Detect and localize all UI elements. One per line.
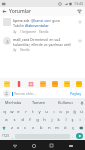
staticText: ş — [71, 117, 74, 123]
button[interactable]: j — [48, 116, 55, 124]
button[interactable]: t — [29, 108, 36, 116]
button[interactable]: Yorum ekle... — [12, 91, 69, 96]
button[interactable]: Emoji — [51, 80, 58, 87]
staticText: i — [79, 117, 81, 123]
button[interactable]: mall_cost — [0, 34, 85, 52]
button[interactable]: Like — [76, 18, 83, 25]
button[interactable]: b — [37, 124, 45, 132]
button[interactable]: x — [15, 124, 22, 132]
staticText: #lakoventolar — [25, 23, 49, 28]
button[interactable]: l — [62, 116, 69, 124]
button[interactable]: s — [10, 116, 18, 124]
button[interactable]: q — [0, 108, 8, 116]
button[interactable]: ı — [50, 108, 57, 116]
button[interactable]: Like — [76, 37, 83, 44]
button[interactable]: Merhaba — [0, 100, 26, 105]
button[interactable]: Emoji — [15, 80, 22, 87]
staticText: y — [38, 109, 41, 115]
button[interactable]: Comma — [10, 134, 15, 139]
button[interactable]: Voice input — [78, 98, 85, 107]
staticText: r — [25, 109, 27, 115]
button[interactable]: ö — [61, 124, 69, 132]
button[interactable]: Emoji — [63, 80, 70, 87]
button[interactable]: Keyboard — [66, 141, 75, 150]
button[interactable]: v — [29, 124, 37, 132]
button[interactable]: ü — [78, 108, 85, 116]
button[interactable]: r — [22, 108, 29, 116]
staticText: Paylaş — [70, 91, 81, 96]
button[interactable]: g — [34, 116, 41, 124]
staticText: Demetevol en su4 — [30, 37, 61, 42]
staticText: x — [17, 125, 20, 131]
button[interactable]: u — [43, 108, 50, 116]
button[interactable]: ş — [69, 116, 76, 124]
staticText: b — [40, 125, 43, 131]
button[interactable]: z — [8, 124, 15, 132]
staticText: 1 beğenme — [20, 30, 36, 34]
button[interactable]: i — [76, 116, 83, 124]
staticText: ç — [72, 125, 75, 131]
staticText: gura — [52, 18, 60, 23]
button[interactable]: h — [41, 116, 48, 124]
button[interactable]: c — [22, 124, 29, 132]
button[interactable]: Emoji — [27, 80, 34, 87]
staticText: @kanxi.savi — [31, 18, 52, 23]
staticText: p — [66, 109, 69, 115]
staticText: v — [32, 125, 35, 131]
button[interactable]: ?123 — [1, 133, 10, 139]
button[interactable]: ğ — [71, 108, 78, 116]
staticText: t — [32, 109, 34, 115]
staticText: Yorumlar — [9, 8, 32, 15]
staticText: Kullanıcı — [58, 100, 73, 105]
button[interactable]: w — [8, 108, 15, 116]
button[interactable]: Tamam — [26, 100, 52, 105]
staticText: z — [11, 125, 13, 131]
button[interactable]: m — [53, 124, 61, 132]
staticText: Yanıtla — [20, 48, 30, 52]
button[interactable]: Emoji — [39, 80, 46, 87]
staticText: n — [48, 125, 51, 131]
button[interactable]: Emoji — [3, 80, 10, 87]
staticText: e — [17, 109, 20, 115]
staticText: kpme.sdc — [13, 18, 31, 23]
button[interactable]: Backspace — [77, 124, 85, 132]
button[interactable]: Home — [29, 141, 38, 150]
button[interactable]: o — [57, 108, 64, 116]
button[interactable]: Back — [0, 7, 9, 16]
staticText: Merhaba — [5, 100, 22, 105]
staticText: j — [51, 117, 53, 123]
staticText: l — [65, 117, 67, 123]
button[interactable]: p — [64, 108, 71, 116]
button[interactable]: Kullanıcı — [52, 100, 78, 105]
staticText: a — [5, 117, 8, 123]
button[interactable]: Back — [10, 141, 19, 150]
button[interactable]: Filter — [75, 7, 84, 16]
staticText: ö — [64, 125, 67, 131]
button[interactable]: f — [26, 116, 34, 124]
staticText: c — [24, 125, 27, 131]
button[interactable]: e — [15, 108, 22, 116]
button[interactable]: kpme.sdc — [0, 16, 85, 34]
button[interactable]: Recents — [47, 141, 56, 150]
staticText: 13:43 — [74, 1, 83, 6]
button[interactable]: Paylaş — [69, 91, 82, 96]
button[interactable]: Emoji — [75, 80, 82, 87]
button[interactable]: Send — [76, 133, 83, 139]
staticText: ğ — [73, 109, 76, 115]
staticText: ?123 — [2, 134, 9, 138]
button[interactable]: y — [36, 108, 43, 116]
staticText: kulandılar, ellerde ve yazılmaz oteli — [13, 42, 72, 47]
staticText: , — [12, 134, 14, 139]
button[interactable]: Period — [70, 134, 75, 139]
button[interactable]: d — [18, 116, 26, 124]
staticText: q — [3, 109, 6, 115]
button[interactable]: n — [45, 124, 53, 132]
button[interactable]: a — [2, 116, 10, 124]
staticText: 4y — [13, 48, 17, 52]
staticText: s — [13, 117, 16, 123]
button[interactable]: Shift — [0, 124, 8, 132]
button[interactable]: ç — [69, 124, 77, 132]
staticText: ı — [53, 109, 55, 115]
button[interactable]: k — [55, 116, 62, 124]
